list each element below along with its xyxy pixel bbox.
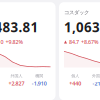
staticText: 機関 bbox=[35, 73, 43, 78]
button[interactable]: コスダック bbox=[59, 2, 100, 100]
staticText: 個人 bbox=[71, 73, 79, 78]
staticText: +440 bbox=[69, 80, 81, 87]
staticText: 1,063.44 bbox=[64, 18, 100, 36]
staticText: 84.7 bbox=[69, 38, 79, 46]
staticText: -217 bbox=[92, 80, 100, 87]
staticText: -1,910 bbox=[32, 80, 47, 87]
staticText: 外国人 bbox=[92, 73, 100, 78]
staticText: 2,483.81 bbox=[0, 18, 38, 36]
staticText: +2,827 bbox=[8, 80, 24, 87]
staticText: +9.82% bbox=[5, 38, 23, 46]
staticText: 外国人 bbox=[10, 73, 22, 78]
staticText: +8.67% bbox=[81, 38, 99, 46]
button[interactable]: コスピ bbox=[0, 2, 55, 100]
staticText: 227.10 bbox=[0, 38, 3, 46]
staticText: コスダック bbox=[64, 9, 89, 16]
